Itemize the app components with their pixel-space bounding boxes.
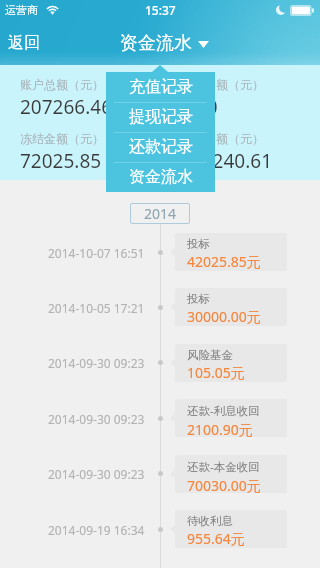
staticText: 42025.85元: [187, 252, 261, 271]
staticText: 2014-10-07 16:51: [48, 245, 145, 261]
staticText: 0.00: [180, 94, 218, 120]
button[interactable]: 充值记录: [106, 72, 215, 102]
button[interactable]: 还款-本金收回: [175, 455, 287, 493]
staticText: 还款-本金收回: [187, 459, 260, 475]
staticText: 提现记录: [129, 107, 193, 127]
staticText: 2014-10-05 17:21: [48, 300, 145, 316]
staticText: 运营商: [5, 3, 38, 17]
button[interactable]: 投标: [175, 288, 287, 326]
button[interactable]: 风险基金: [175, 344, 287, 382]
button[interactable]: 还款记录: [106, 132, 215, 162]
button[interactable]: 资金流水: [114, 27, 215, 60]
staticText: 2014-09-19 16:34: [48, 522, 145, 538]
button[interactable]: 还款-利息收回: [175, 399, 287, 437]
staticText: 207266.46: [20, 94, 113, 120]
staticText: 105.05元: [187, 363, 245, 382]
staticText: 投标: [187, 237, 210, 251]
staticText: 2014-09-30 09:23: [48, 466, 145, 482]
staticText: 待收金额（元）: [180, 131, 264, 146]
staticText: 2014: [144, 204, 177, 223]
staticText: 冻结金额（元）: [20, 131, 104, 146]
staticText: 还款记录: [129, 137, 193, 157]
staticText: 资金流水: [129, 167, 193, 187]
staticText: 待收利息: [187, 514, 233, 528]
button[interactable]: 提现记录: [106, 102, 215, 132]
staticText: 2014-09-30 09:23: [48, 411, 145, 427]
staticText: 15:37: [145, 2, 176, 18]
staticText: 充值记录: [129, 77, 193, 97]
staticText: 135240.61: [180, 148, 273, 174]
staticText: 账户总额（元）: [20, 77, 104, 92]
button[interactable]: 返回: [0, 24, 52, 62]
button[interactable]: 2014: [130, 203, 190, 224]
staticText: 70030.00元: [187, 476, 261, 493]
button[interactable]: 资金流水: [106, 162, 215, 192]
staticText: 风险基金: [187, 348, 233, 362]
staticText: 还款-利息收回: [187, 403, 260, 419]
staticText: 账户余额（元）: [180, 77, 264, 92]
button[interactable]: 投标: [175, 233, 287, 271]
staticText: 2100.90元: [187, 420, 253, 437]
staticText: 返回: [8, 33, 40, 53]
staticText: 955.64元: [187, 529, 245, 548]
staticText: 资金流水: [120, 32, 192, 55]
staticText: 72025.85: [20, 148, 102, 174]
staticText: 投标: [187, 292, 210, 306]
staticText: 2014-09-30 09:23: [48, 355, 145, 371]
button[interactable]: 待收利息: [175, 510, 287, 548]
staticText: 30000.00元: [187, 307, 261, 326]
